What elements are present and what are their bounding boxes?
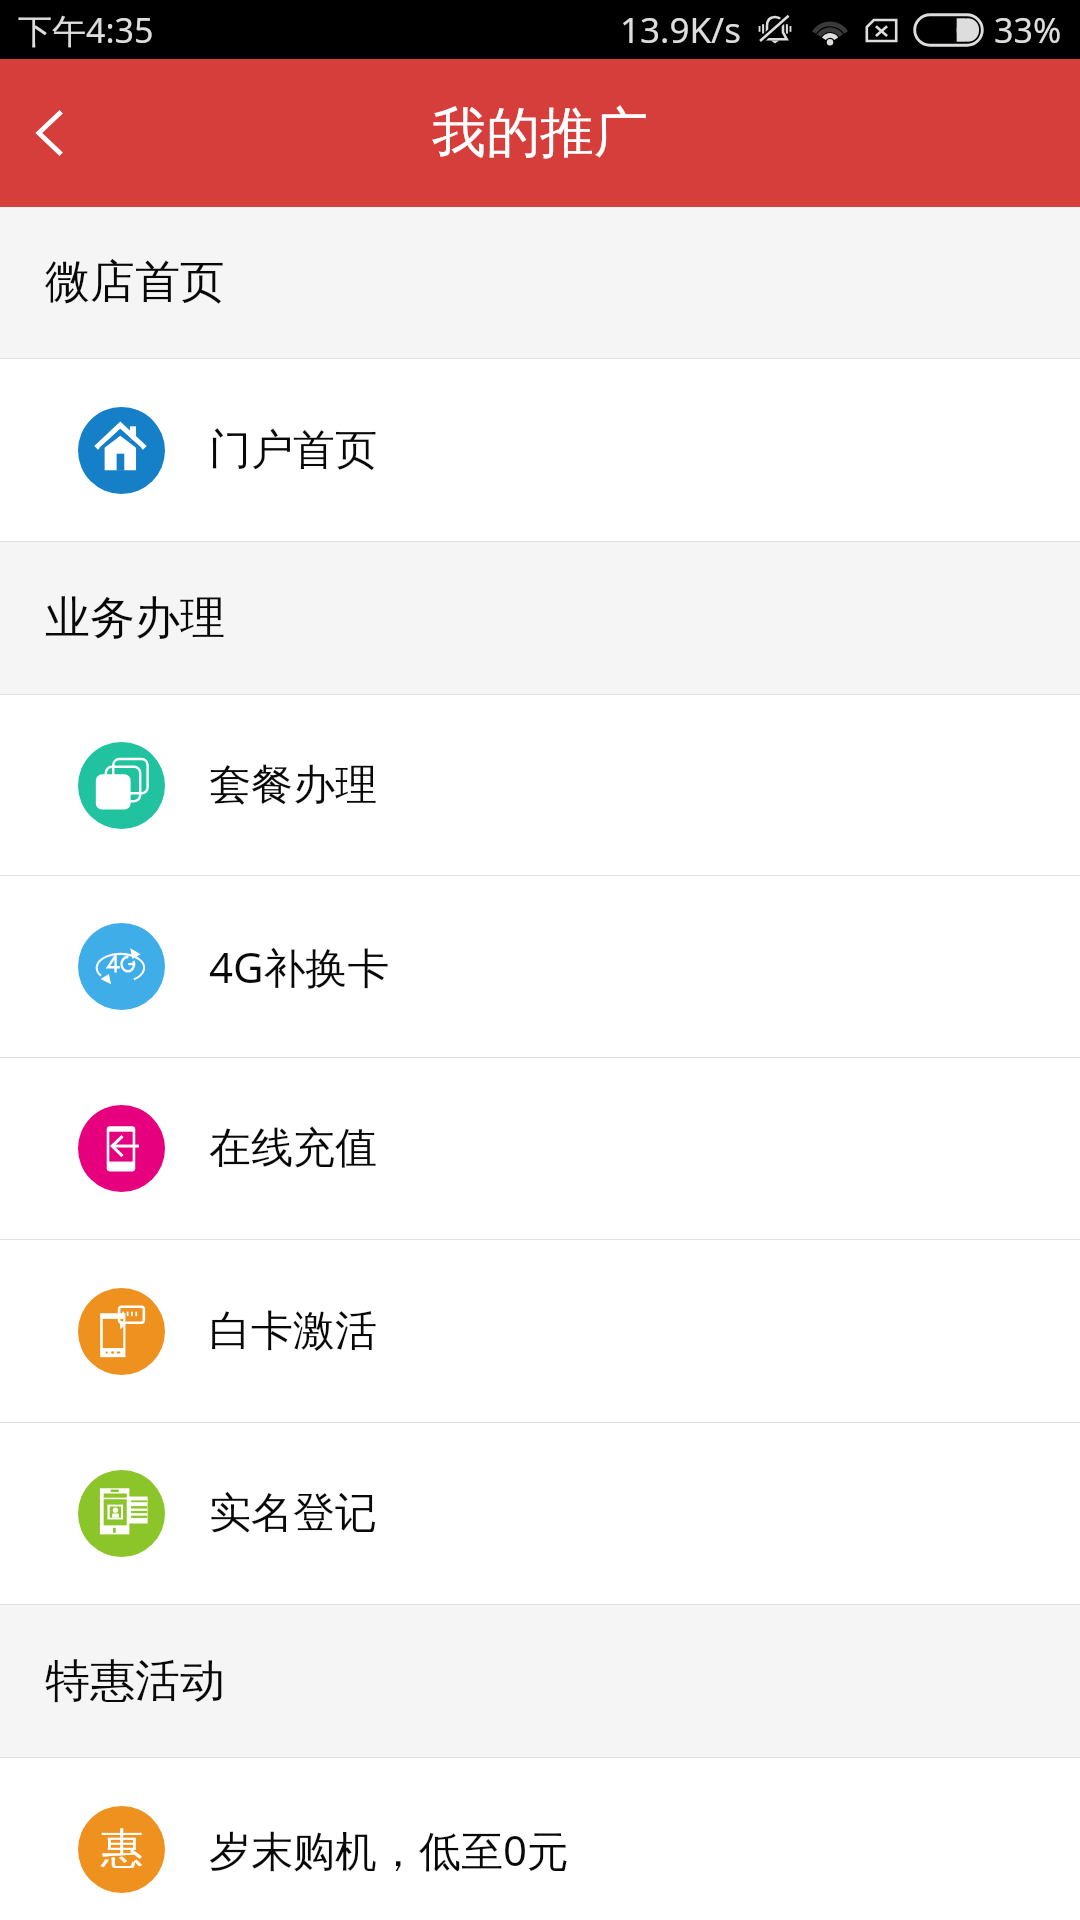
button[interactable]: 套餐办理 [0,695,1080,875]
staticText: 套餐办理 [209,759,377,812]
button[interactable]: 惠 [0,1758,1080,1920]
staticText: 33% [994,7,1062,53]
button[interactable]: 4G补换卡 [0,876,1080,1057]
staticText: 13.9K/s [620,6,741,54]
staticText: 实名登记 [209,1487,377,1540]
staticText: 门户首页 [209,424,377,477]
staticText: 惠 [101,1823,143,1876]
button[interactable]: 实名登记 [0,1423,1080,1604]
button[interactable]: Back [0,59,100,207]
staticText: 白卡激活 [209,1305,377,1358]
button[interactable]: 在线充值 [0,1058,1080,1239]
button[interactable]: 白卡激活 [0,1240,1080,1422]
staticText: 业务办理 [45,590,225,647]
staticText: 在线充值 [209,1122,377,1175]
staticText: 特惠活动 [45,1653,225,1710]
staticText: 4G补换卡 [209,938,390,995]
staticText: 岁末购机，低至0元 [209,1821,570,1878]
staticText: 微店首页 [45,254,225,311]
button[interactable]: 门户首页 [0,359,1080,541]
staticText: 下午4:35 [18,7,154,53]
staticText: 我的推广 [432,99,648,167]
